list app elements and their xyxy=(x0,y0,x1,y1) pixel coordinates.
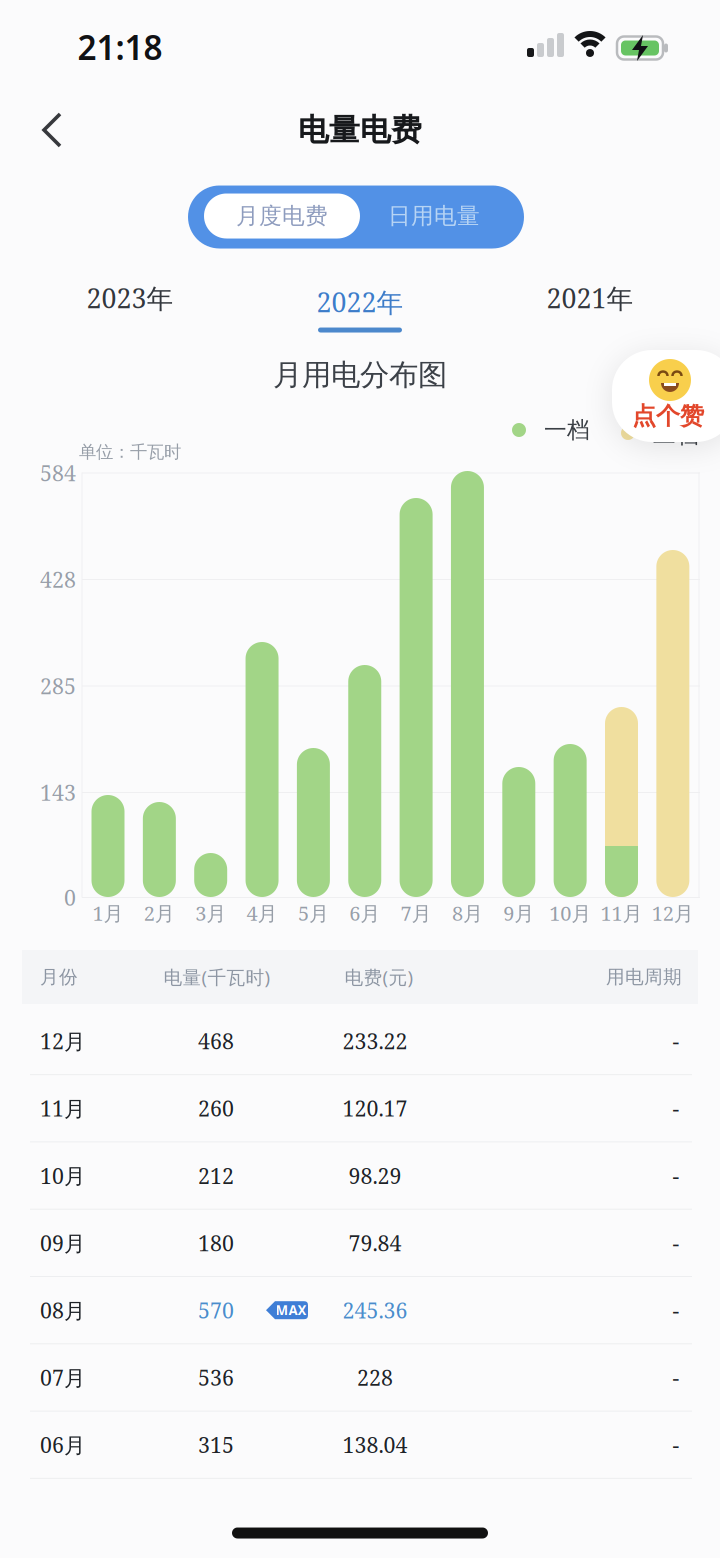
staticText: 0 xyxy=(64,883,76,912)
staticText: 月用电分布图 xyxy=(273,357,447,393)
staticText: 08月 xyxy=(40,1296,85,1325)
staticText: - xyxy=(672,1430,679,1459)
staticText: 260 xyxy=(198,1094,234,1123)
staticText: 3月 xyxy=(195,899,226,927)
staticText: 8月 xyxy=(452,899,483,927)
staticText: 9月 xyxy=(503,899,534,927)
staticText: 233.22 xyxy=(342,1026,407,1056)
staticText: 一档 xyxy=(544,416,590,444)
staticText: 日用电量 xyxy=(388,202,480,230)
staticText: 570 xyxy=(198,1296,234,1325)
staticText: 143 xyxy=(40,778,76,807)
staticText: 电量电费 xyxy=(298,111,422,149)
staticText: 2月 xyxy=(144,899,175,927)
staticText: 12月 xyxy=(40,1026,85,1056)
staticText: 138.04 xyxy=(342,1430,407,1459)
staticText: 1月 xyxy=(92,899,123,927)
staticText: - xyxy=(672,1296,679,1325)
staticText: 6月 xyxy=(349,899,380,927)
staticText: 11月 xyxy=(600,899,642,927)
button[interactable]: 2022年 xyxy=(280,272,440,332)
staticText: 79.84 xyxy=(348,1228,401,1257)
staticText: 二档 xyxy=(653,421,699,449)
staticText: MAX xyxy=(275,1301,306,1319)
staticText: 120.17 xyxy=(342,1094,407,1123)
staticText: 4月 xyxy=(247,899,278,927)
staticText: 点个赞 xyxy=(632,401,704,431)
staticText: 7月 xyxy=(401,899,432,927)
staticText: 285 xyxy=(40,671,76,701)
staticText: - xyxy=(672,1228,679,1257)
staticText: 5月 xyxy=(298,899,329,927)
button[interactable]: 2021年 xyxy=(510,276,670,320)
staticText: - xyxy=(672,1161,679,1190)
staticText: 212 xyxy=(198,1161,234,1190)
staticText: 98.29 xyxy=(348,1161,401,1190)
staticText: 07月 xyxy=(40,1363,85,1392)
staticText: 11月 xyxy=(40,1094,85,1123)
button[interactable]: 日用电量 xyxy=(359,193,509,238)
staticText: 06月 xyxy=(40,1430,85,1459)
staticText: 315 xyxy=(198,1430,234,1459)
staticText: - xyxy=(672,1026,679,1056)
staticText: 245.36 xyxy=(342,1296,407,1325)
staticText: 电量(千瓦时) xyxy=(163,965,270,989)
staticText: 月份 xyxy=(40,965,78,988)
staticText: 428 xyxy=(40,565,76,594)
staticText: 2022年 xyxy=(316,284,403,320)
staticText: 09月 xyxy=(40,1228,85,1257)
staticText: 电费(元) xyxy=(344,965,413,989)
button[interactable]: Back xyxy=(38,110,78,150)
staticText: 2023年 xyxy=(86,280,173,316)
staticText: 536 xyxy=(198,1363,234,1392)
staticText: 月度电费 xyxy=(236,202,328,230)
staticText: 用电周期 xyxy=(606,965,682,988)
button[interactable]: 月度电费 xyxy=(204,193,360,238)
button[interactable]: 2023年 xyxy=(50,276,210,320)
staticText: 180 xyxy=(198,1228,234,1257)
staticText: - xyxy=(672,1363,679,1392)
staticText: - xyxy=(672,1094,679,1123)
staticText: 584 xyxy=(40,458,76,488)
staticText: 21:18 xyxy=(77,25,162,69)
staticText: 10月 xyxy=(40,1161,85,1190)
staticText: 10月 xyxy=(549,899,591,927)
staticText: 468 xyxy=(198,1026,234,1056)
staticText: 228 xyxy=(357,1363,393,1392)
staticText: 12月 xyxy=(652,899,694,927)
button[interactable]: 点个赞 xyxy=(612,350,720,442)
staticText: 单位：千瓦时 xyxy=(79,441,181,463)
staticText: 2021年 xyxy=(546,280,633,316)
